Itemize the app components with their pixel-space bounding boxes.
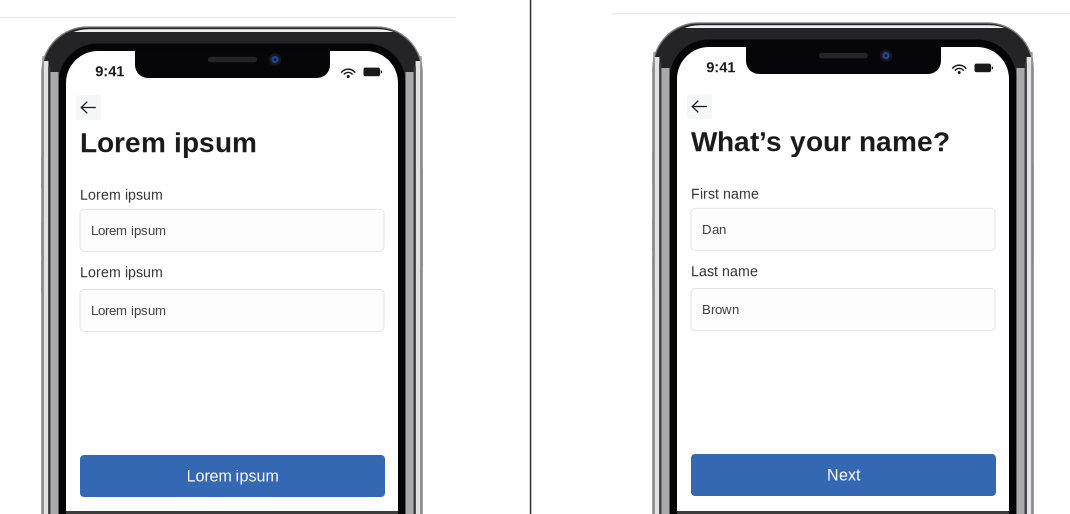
button[interactable]: Lorem ipsum [80,455,385,497]
button[interactable]: Next [691,454,996,496]
staticText: Last name [691,263,758,279]
staticText: What’s your name? [691,126,950,157]
button[interactable]: Back [76,95,101,120]
staticText: 9:41 [95,63,124,79]
staticText: Lorem ipsum [80,127,257,158]
staticText: Brown [702,302,739,317]
staticText: First name [691,186,759,202]
staticText: Dan [702,222,726,237]
staticText: 9:41 [706,59,735,75]
button[interactable]: Back [687,94,712,119]
staticText: Lorem ipsum [80,264,163,280]
staticText: Next [827,466,860,484]
staticText: Lorem ipsum [91,223,166,238]
staticText: Lorem ipsum [91,303,166,318]
staticText: Lorem ipsum [80,187,163,203]
staticText: Lorem ipsum [186,467,278,485]
